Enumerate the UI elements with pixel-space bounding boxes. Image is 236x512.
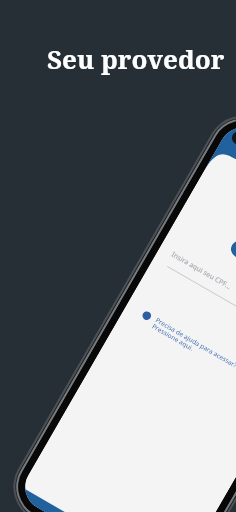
staticText: Pressione aqui. xyxy=(150,322,196,353)
staticText: Precisa de ajuda para acessar? xyxy=(154,315,236,370)
staticText: Seu provedor xyxy=(47,41,225,76)
staticText: Insira aqui seu CPF... xyxy=(169,250,233,292)
